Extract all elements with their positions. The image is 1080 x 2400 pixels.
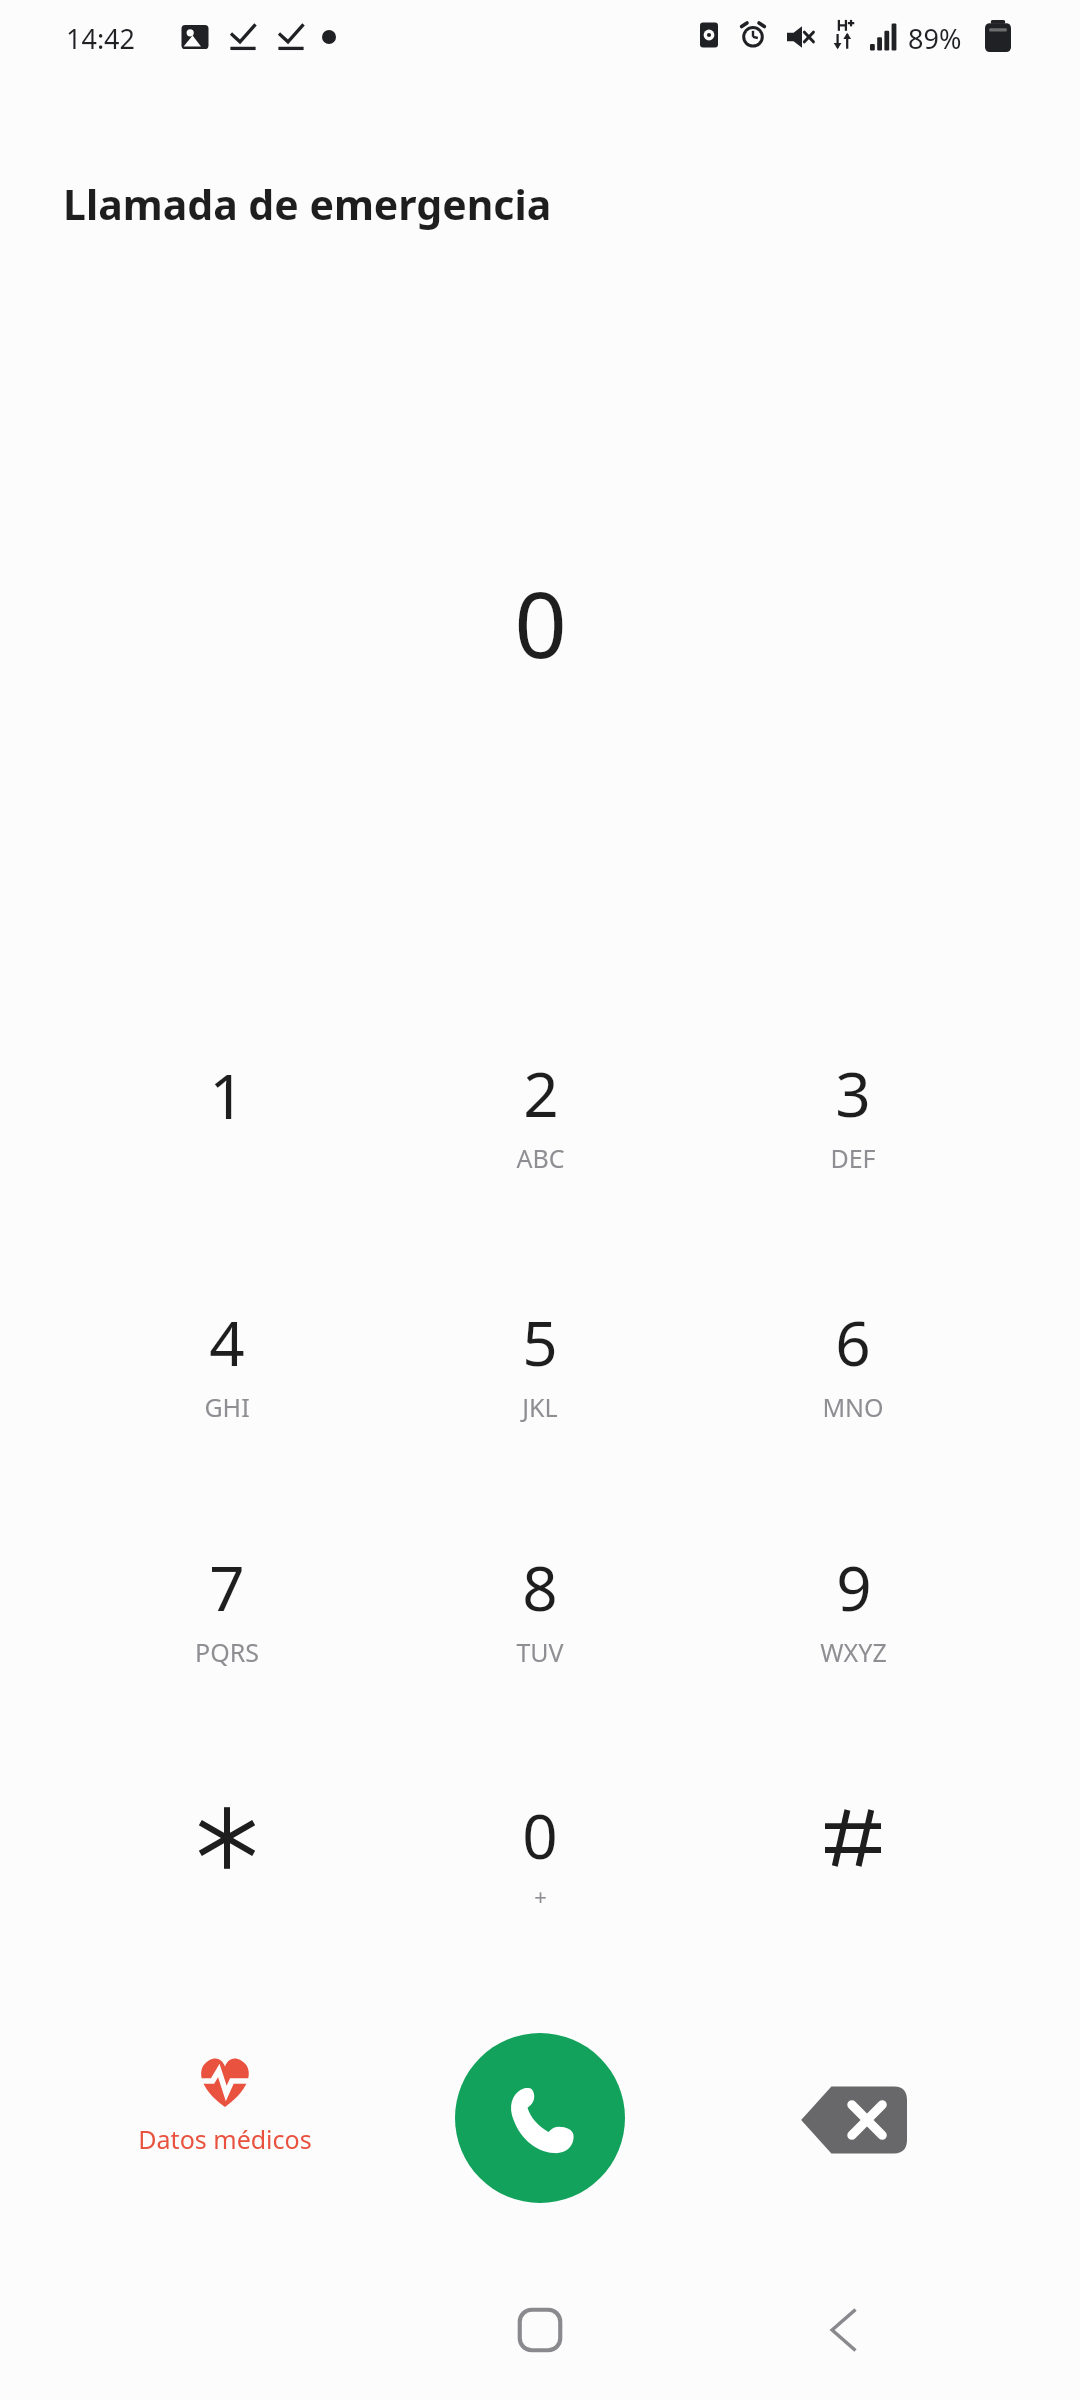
staticText: 3 (835, 1051, 871, 1135)
staticText: 0 (514, 560, 567, 685)
staticText: Llamada de emergencia (63, 176, 552, 232)
button[interactable]: 8 (390, 1492, 690, 1722)
staticText: WXYZ (820, 1635, 887, 1669)
button[interactable]: 4 (77, 1247, 377, 1477)
staticText: 1 (209, 1053, 245, 1137)
staticText: ABC (516, 1141, 565, 1175)
button[interactable]: pound (703, 1737, 1003, 1967)
button[interactable]: Datos médicos (105, 2050, 345, 2200)
button[interactable]: 7 (77, 1492, 377, 1722)
staticText: DEF (830, 1141, 876, 1175)
staticText: 6 (835, 1300, 871, 1384)
button[interactable]: Call (455, 2033, 625, 2203)
button[interactable]: Back (775, 2295, 915, 2400)
staticText: + (534, 1881, 547, 1911)
staticText: GHI (204, 1390, 250, 1424)
button[interactable]: Backspace (778, 2060, 928, 2180)
staticText: 8 (522, 1545, 558, 1629)
button[interactable]: 2 (390, 998, 690, 1228)
staticText: JKL (522, 1390, 558, 1424)
staticText: 2 (523, 1051, 559, 1135)
staticText: PQRS (195, 1635, 259, 1669)
button[interactable]: 6 (703, 1247, 1003, 1477)
staticText: 89% (908, 20, 962, 57)
staticText: 14:42 (66, 20, 136, 57)
button[interactable]: 0 (390, 1737, 690, 1967)
button[interactable]: 9 (703, 1492, 1003, 1722)
staticText: 7 (209, 1545, 245, 1629)
staticText: 5 (522, 1300, 558, 1384)
button[interactable]: asterisk (77, 1737, 377, 1967)
button[interactable]: 5 (390, 1247, 690, 1477)
staticText: TUV (516, 1635, 564, 1669)
staticText: MNO (822, 1390, 884, 1424)
button[interactable]: Home (470, 2295, 610, 2400)
staticText: Datos médicos (138, 2122, 312, 2156)
staticText: 4 (209, 1300, 245, 1384)
button[interactable]: 3 (703, 998, 1003, 1228)
staticText: 0 (522, 1793, 558, 1877)
staticText: 9 (836, 1545, 872, 1629)
button[interactable]: 1 (77, 998, 377, 1228)
